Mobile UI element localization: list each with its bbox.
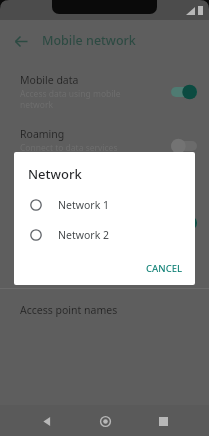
- button[interactable]: Toggle: [171, 215, 197, 231]
- staticText: Mobile network: [42, 32, 136, 49]
- button[interactable]: Roaming: [0, 123, 209, 168]
- staticText: Mobile data: [20, 73, 79, 87]
- button[interactable]: Network 1: [14, 194, 195, 216]
- button[interactable]: Toggle: [171, 138, 197, 154]
- button[interactable]: Automatically select network: [0, 205, 209, 240]
- button[interactable]: CANCEL: [134, 257, 195, 280]
- staticText: Network 2: [58, 228, 109, 242]
- button[interactable]: Back: [33, 408, 59, 434]
- button[interactable]: Home: [92, 408, 118, 434]
- button[interactable]: Mobile data: [0, 69, 209, 114]
- staticText: Network: [28, 165, 82, 183]
- button[interactable]: Back: [8, 28, 34, 54]
- staticText: Connect to data services when roaming: [20, 142, 118, 164]
- staticText: Network 1: [58, 198, 109, 212]
- button[interactable]: Toggle: [171, 84, 197, 100]
- staticText: Roaming: [20, 127, 65, 141]
- staticText: CANCEL: [146, 262, 183, 275]
- staticText: Automatically select network: [20, 209, 119, 236]
- staticText: Access data using mobile network: [20, 88, 121, 110]
- staticText: Access point names: [20, 303, 118, 317]
- button[interactable]: Recent apps: [150, 408, 176, 434]
- button[interactable]: Network 2: [14, 224, 195, 246]
